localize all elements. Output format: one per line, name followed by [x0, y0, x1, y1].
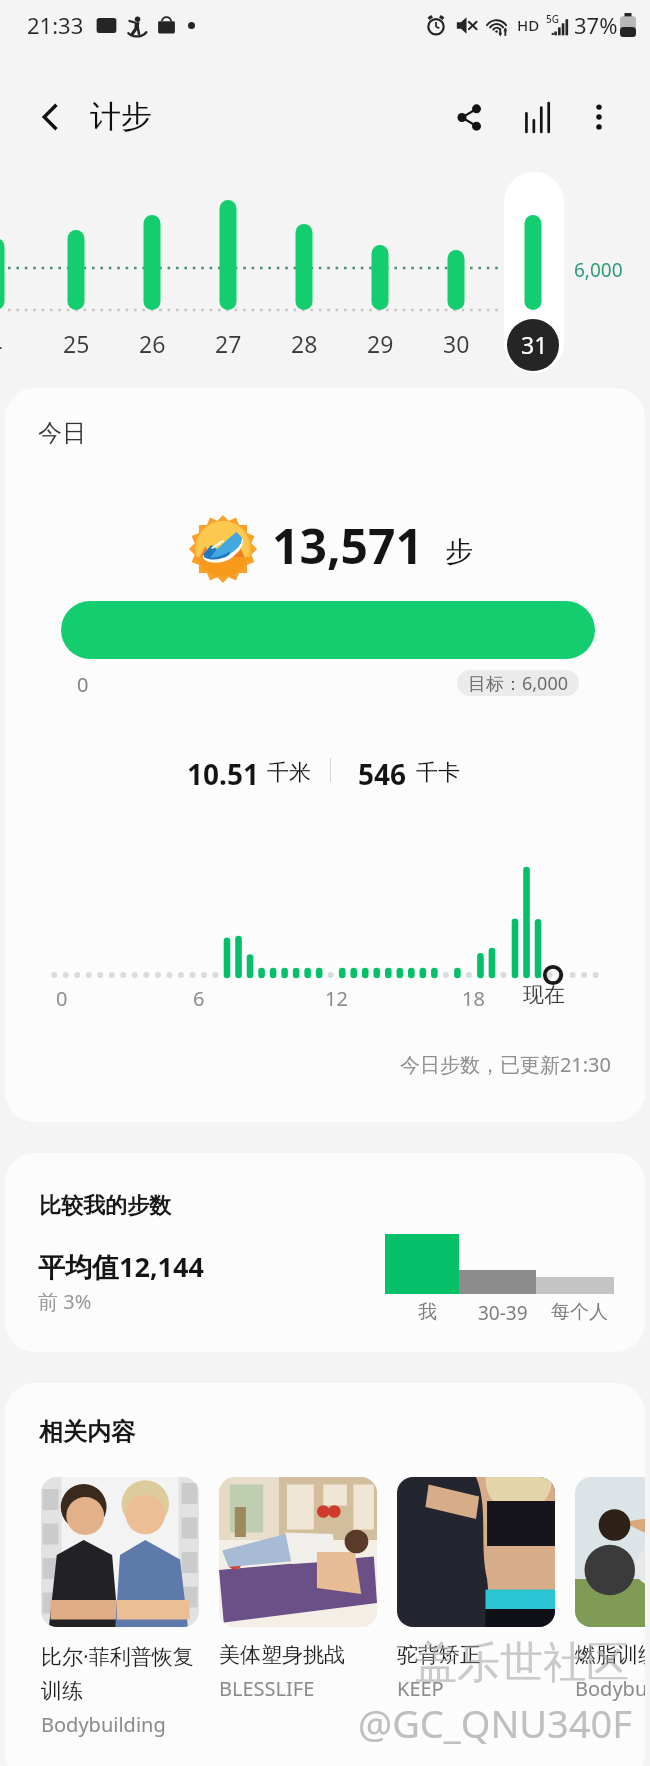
staticText: Bodybuilding	[41, 1711, 166, 1738]
staticText: @GC_QNU340F	[358, 1697, 632, 1749]
button[interactable]: Statistics	[508, 88, 566, 146]
staticText: 10.51	[187, 755, 259, 793]
staticText: 驼背矫正	[397, 1642, 481, 1668]
staticText: 千米	[267, 759, 311, 787]
staticText: 26	[139, 328, 166, 359]
staticText: 6	[193, 985, 205, 1012]
staticText: 前 3%	[38, 1288, 92, 1315]
button[interactable]	[397, 1477, 555, 1627]
staticText: 今日	[38, 418, 86, 448]
staticText: HD	[517, 15, 540, 35]
staticText: 18	[462, 985, 485, 1012]
staticText: 30-39	[478, 1300, 528, 1326]
button[interactable]: 比较我的步数	[5, 1153, 645, 1352]
button[interactable]	[219, 1477, 377, 1627]
staticText: 4	[0, 328, 3, 359]
button[interactable]: More options	[570, 88, 628, 146]
staticText: 0	[56, 985, 68, 1012]
staticText: 步	[445, 534, 473, 569]
staticText: 训练	[41, 1678, 83, 1704]
staticText: 12	[325, 985, 348, 1012]
staticText: 计步	[90, 97, 152, 136]
staticText: 0	[77, 671, 89, 698]
staticText: 27	[215, 328, 242, 359]
staticText: 546	[358, 755, 407, 793]
staticText: 千卡	[416, 759, 460, 787]
button[interactable]	[575, 1477, 645, 1627]
staticText: 每个人	[551, 1300, 608, 1324]
staticText: 美体塑身挑战	[219, 1642, 345, 1668]
staticText: 28	[291, 328, 318, 359]
staticText: 相关内容	[39, 1417, 135, 1447]
staticText: 比较我的步数	[39, 1192, 171, 1220]
staticText: 13,571	[272, 513, 423, 578]
staticText: 比尔·菲利普恢复	[41, 1642, 194, 1671]
button[interactable]: Back	[22, 88, 80, 146]
staticText: BLESSLIFE	[219, 1675, 315, 1702]
staticText: Bodybuilding	[575, 1675, 645, 1702]
staticText: 25	[63, 328, 90, 359]
staticText: 30	[443, 328, 470, 359]
staticText: 盖乐世社区	[414, 1636, 629, 1690]
button[interactable]: 今日	[5, 388, 645, 1122]
staticText: 现在	[523, 982, 565, 1008]
staticText: 37%	[574, 10, 618, 40]
staticText: 今日步数，已更新21:30	[5, 1051, 611, 1078]
staticText: KEEP	[397, 1675, 444, 1702]
staticText: 21:33	[27, 10, 84, 40]
button[interactable]	[41, 1477, 199, 1627]
staticText: 我	[418, 1300, 437, 1324]
staticText: 6,000	[574, 257, 623, 283]
staticText: 29	[367, 328, 394, 359]
staticText: 目标：6,000	[468, 671, 569, 696]
staticText: 燃脂训练	[575, 1642, 645, 1668]
staticText: 平均值12,144	[38, 1248, 204, 1285]
staticText: 5G	[546, 12, 559, 26]
button[interactable]: Share	[440, 88, 498, 146]
staticText: 31	[521, 329, 548, 360]
